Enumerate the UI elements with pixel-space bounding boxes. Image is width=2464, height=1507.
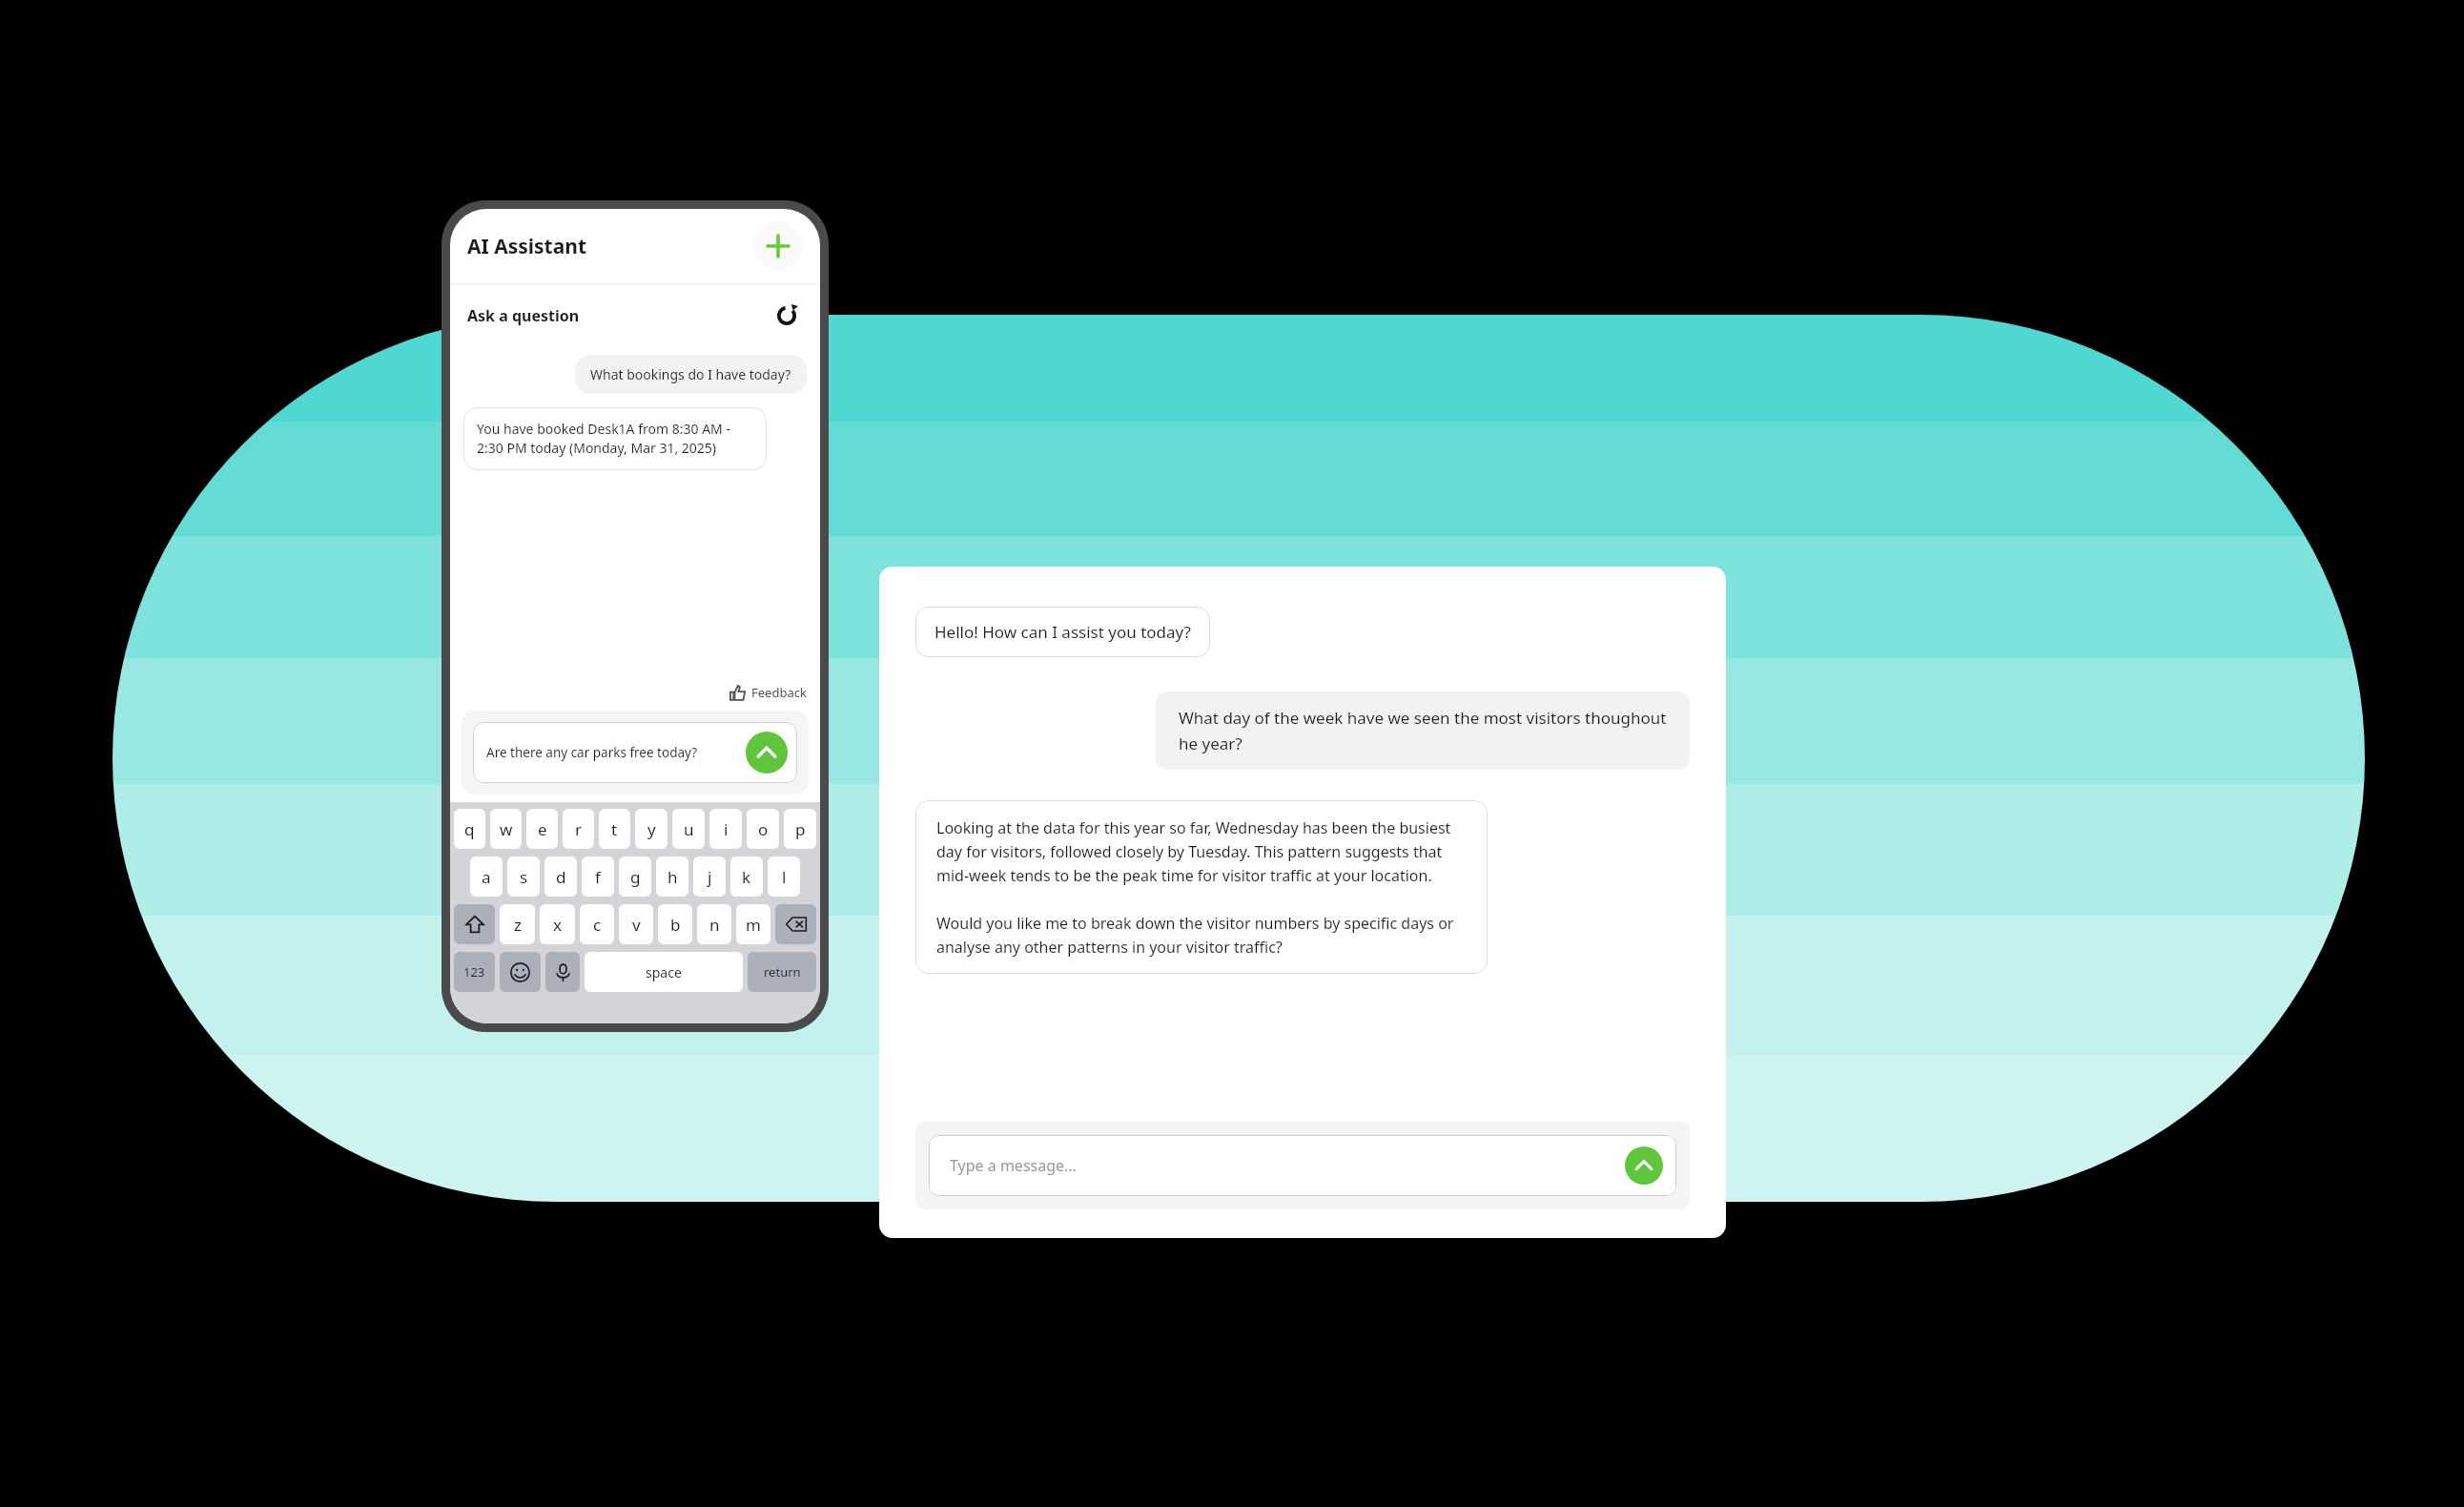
staticText: space (646, 963, 682, 981)
button[interactable]: s (507, 857, 540, 897)
staticText: What day of the week have we seen the mo… (1179, 707, 1667, 754)
button[interactable]: i (709, 809, 742, 849)
staticText: p (795, 818, 806, 840)
button[interactable]: x (540, 904, 575, 944)
button[interactable]: space (585, 952, 743, 992)
button[interactable]: d (544, 857, 577, 897)
staticText: Ask a question (467, 305, 580, 326)
staticText: l (782, 866, 787, 888)
button[interactable]: l (768, 857, 800, 897)
button[interactable]: g (619, 857, 651, 897)
staticText: Feedback (751, 684, 807, 701)
button[interactable]: Refresh (770, 299, 803, 332)
staticText: x (553, 914, 562, 936)
staticText: h (667, 866, 678, 888)
button[interactable]: Feedback (463, 684, 807, 701)
staticText: j (708, 866, 712, 888)
staticText: return (764, 963, 801, 981)
button[interactable]: e (526, 809, 558, 849)
staticText: f (595, 866, 601, 888)
staticText: What bookings do I have today? (590, 365, 791, 383)
button[interactable]: y (635, 809, 667, 849)
button[interactable]: Send (1625, 1146, 1663, 1185)
button[interactable]: a (470, 857, 503, 897)
staticText: o (758, 818, 769, 840)
button[interactable]: What bookings do I have today? (575, 355, 807, 394)
staticText: AI Assistant (467, 233, 587, 260)
button[interactable]: Type a message... (929, 1135, 1676, 1196)
button[interactable]: p (784, 809, 816, 849)
button[interactable]: u (672, 809, 705, 849)
staticText: k (742, 866, 751, 888)
button[interactable]: j (693, 857, 726, 897)
button[interactable]: c (580, 904, 614, 944)
staticText: c (593, 914, 602, 936)
staticText: y (647, 818, 656, 840)
staticText: s (520, 866, 528, 888)
button[interactable]: Emoji (500, 952, 541, 992)
button[interactable]: Shift (454, 904, 495, 944)
staticText: d (556, 866, 566, 888)
button[interactable]: v (619, 904, 653, 944)
button[interactable]: t (599, 809, 630, 849)
staticText: Are there any car parks free today? (486, 744, 698, 761)
button[interactable]: New chat (753, 221, 803, 271)
staticText: g (630, 866, 641, 888)
button[interactable]: f (582, 857, 614, 897)
staticText: q (464, 818, 475, 840)
button[interactable]: m (736, 904, 770, 944)
staticText: e (538, 818, 547, 840)
staticText: r (575, 818, 583, 840)
staticText: t (611, 818, 618, 840)
button[interactable]: r (563, 809, 594, 849)
staticText: i (724, 818, 729, 840)
staticText: You have booked Desk1A from 8:30 AM - 2:… (477, 420, 753, 458)
button[interactable]: b (658, 904, 692, 944)
button[interactable]: k (730, 857, 763, 897)
staticText: b (670, 914, 681, 936)
button[interactable]: z (500, 904, 535, 944)
button[interactable]: q (454, 809, 485, 849)
button[interactable]: h (656, 857, 688, 897)
button[interactable]: Are there any car parks free today? (473, 722, 797, 783)
staticText: Hello! How can I assist you today? (934, 621, 1191, 643)
staticText: v (632, 914, 641, 936)
button[interactable]: 123 (454, 952, 495, 992)
staticText: z (514, 914, 522, 936)
staticText: n (709, 914, 720, 936)
button[interactable]: Send (746, 732, 788, 774)
button[interactable]: Looking at the data for this year so far… (915, 800, 1488, 974)
staticText: u (684, 818, 694, 840)
staticText: Looking at the data for this year so far… (936, 817, 1467, 957)
button[interactable]: Backspace (775, 904, 816, 944)
button[interactable]: return (748, 952, 816, 992)
button[interactable]: w (490, 809, 522, 849)
button[interactable]: What day of the week have we seen the mo… (1156, 692, 1690, 770)
staticText: m (746, 914, 761, 936)
staticText: 123 (463, 963, 485, 981)
staticText: Type a message... (950, 1155, 1077, 1176)
staticText: w (500, 818, 513, 840)
button[interactable]: Hello! How can I assist you today? (915, 607, 1210, 657)
button[interactable]: You have booked Desk1A from 8:30 AM - 2:… (463, 407, 767, 470)
button[interactable]: n (697, 904, 731, 944)
button[interactable]: Voice input (545, 952, 580, 992)
button[interactable]: o (747, 809, 779, 849)
staticText: a (482, 866, 491, 888)
